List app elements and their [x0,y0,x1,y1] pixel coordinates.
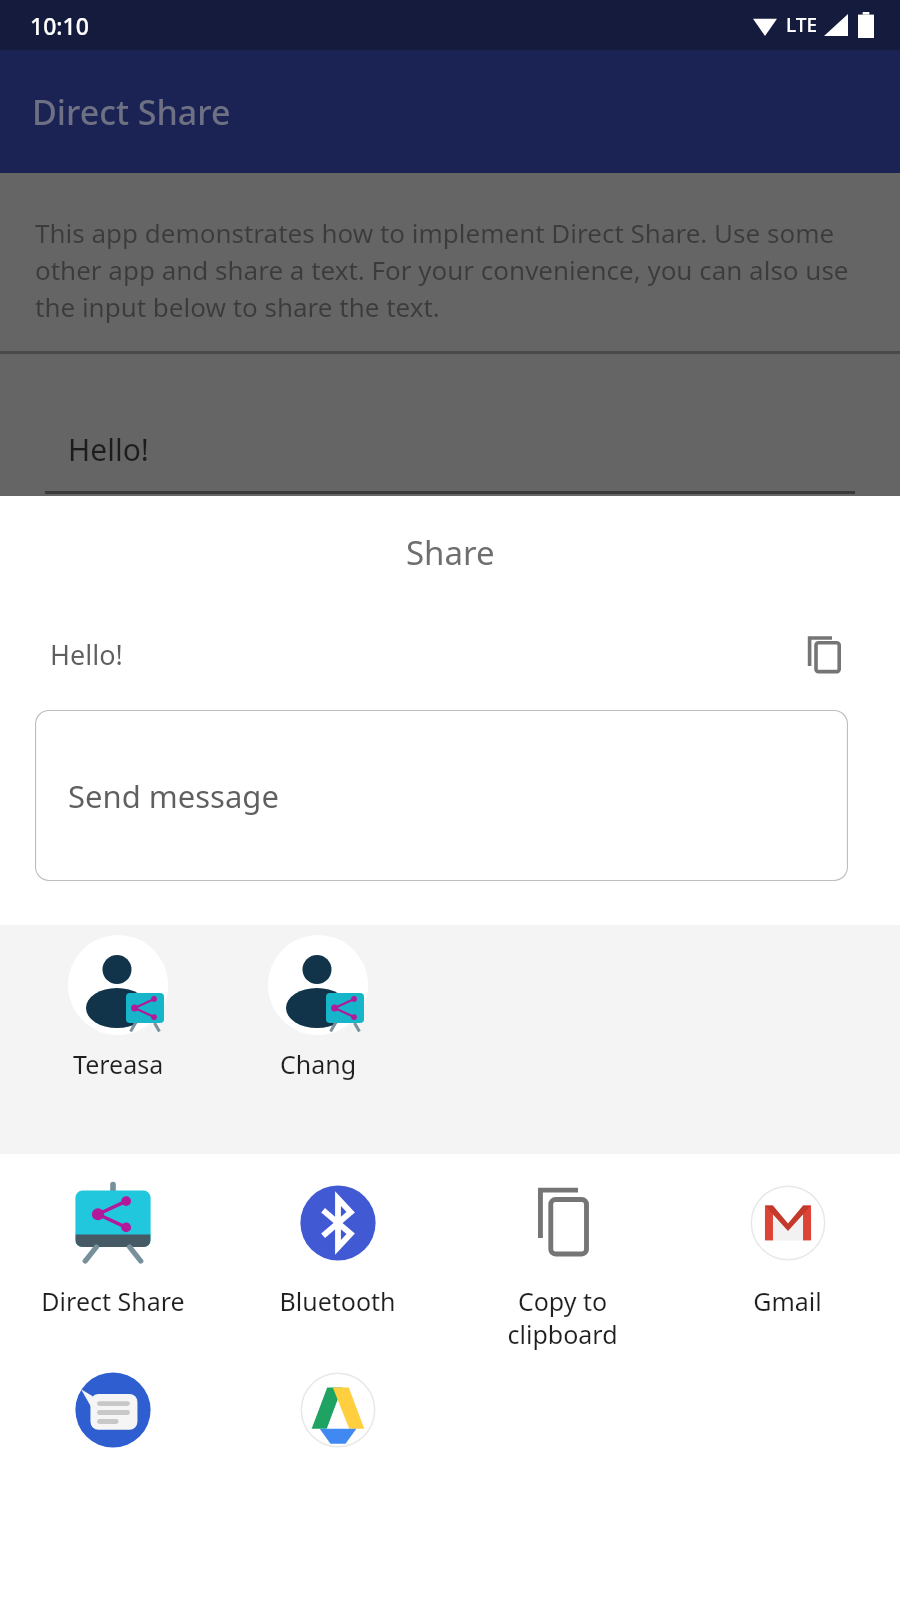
staticText: Share [406,530,495,575]
staticText: Hello! [68,429,149,470]
button[interactable]: Direct Share [0,1176,225,1318]
staticText: Chang [280,1047,357,1081]
button[interactable]: Copy to clipboard [450,1176,675,1351]
button[interactable]: Chang [218,935,418,1081]
button[interactable]: Gmail [675,1176,900,1318]
staticText: LTE [786,12,818,38]
button[interactable]: Tereasa [18,935,218,1081]
staticText: Copy to clipboard [507,1284,618,1351]
button[interactable] [225,1363,450,1457]
button[interactable]: Copy to clipboard [793,623,855,685]
button[interactable]: Bluetooth [225,1176,450,1318]
staticText: 10:10 [30,10,89,41]
staticText: Gmail [753,1284,822,1318]
button[interactable]: Send message [35,710,848,881]
staticText: Hello! [50,636,123,673]
staticText: Bluetooth [279,1284,396,1318]
button[interactable] [0,1363,225,1457]
staticText: Send message [68,775,279,817]
staticText: This app demonstrates how to implement D… [35,215,850,325]
staticText: Direct Share [32,89,231,135]
staticText: Direct Share [41,1284,185,1318]
staticText: Tereasa [73,1047,164,1081]
